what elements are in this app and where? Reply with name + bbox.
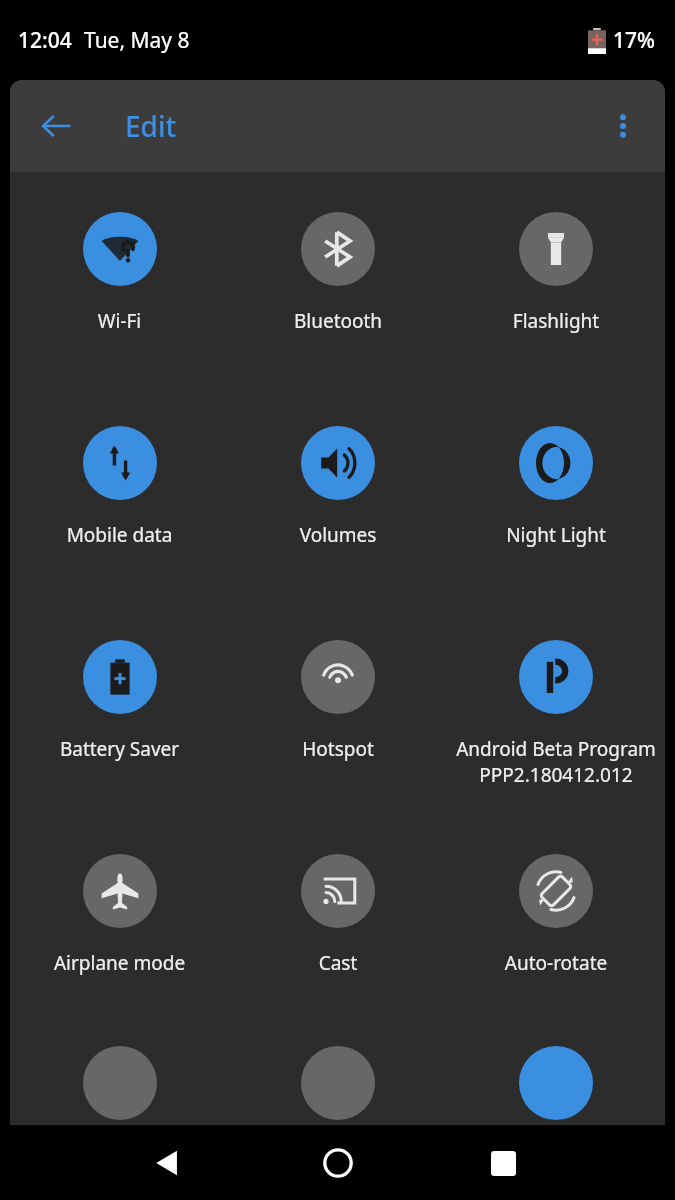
button[interactable]: Battery Saver [10, 618, 229, 832]
staticText: Android Beta Program [447, 736, 665, 762]
staticText: Tue, May 8 [84, 26, 190, 55]
staticText: 12:04 [18, 26, 72, 55]
staticText: Cast [229, 950, 447, 976]
staticText: PPP2.180412.012 [447, 762, 665, 788]
button[interactable]: Bluetooth [229, 190, 447, 404]
button[interactable]: More options [595, 98, 651, 154]
staticText: Night Light [447, 522, 665, 548]
button[interactable]: Home [308, 1133, 368, 1193]
button[interactable]: Recent apps [473, 1133, 533, 1193]
button[interactable]: Hotspot [229, 618, 447, 832]
staticText: 17% [613, 26, 655, 55]
button[interactable] [447, 1046, 665, 1125]
button[interactable]: Airplane mode [10, 832, 229, 1046]
button[interactable]: Back [28, 98, 84, 154]
staticText: Hotspot [229, 736, 447, 762]
button[interactable] [229, 1046, 447, 1125]
button[interactable]: Android Beta Program [447, 618, 665, 832]
button[interactable]: Back [138, 1133, 198, 1193]
staticText: Mobile data [10, 522, 229, 548]
staticText: Edit [125, 107, 177, 145]
staticText: Battery Saver [10, 736, 229, 762]
button[interactable]: Auto-rotate [447, 832, 665, 1046]
button[interactable]: Volumes [229, 404, 447, 618]
button[interactable]: Wi-Fi [10, 190, 229, 404]
staticText: Airplane mode [10, 950, 229, 976]
button[interactable] [10, 1046, 229, 1125]
staticText: Volumes [229, 522, 447, 548]
button[interactable]: Flashlight [447, 190, 665, 404]
staticText: Flashlight [447, 308, 665, 334]
button[interactable]: Mobile data [10, 404, 229, 618]
button[interactable]: Night Light [447, 404, 665, 618]
staticText: Bluetooth [229, 308, 447, 334]
button[interactable]: Cast [229, 832, 447, 1046]
staticText: Wi-Fi [10, 308, 229, 334]
staticText: Auto-rotate [447, 950, 665, 976]
